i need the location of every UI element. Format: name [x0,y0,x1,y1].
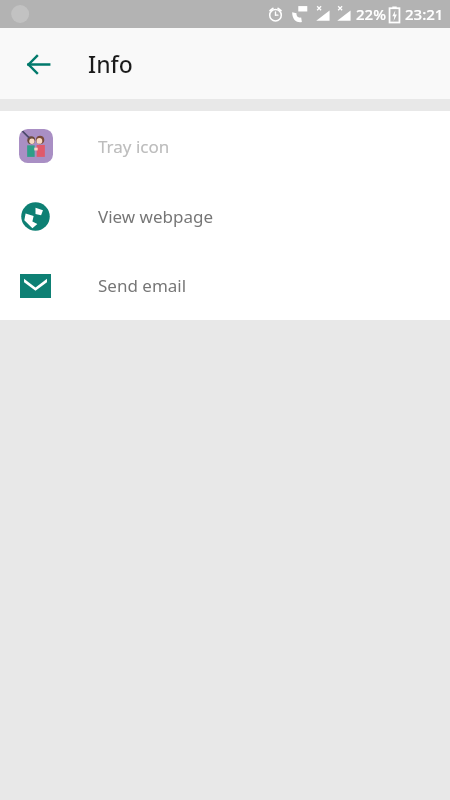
button[interactable]: View webpage [0,181,450,251]
button[interactable]: Send email [0,251,450,320]
staticText: Info [88,48,133,79]
staticText: View webpage [98,205,214,228]
button[interactable]: Back [14,40,62,88]
staticText: Send email [98,274,187,297]
staticText: 23:21 [405,4,444,24]
staticText: 22% [356,4,386,24]
button[interactable]: Tray icon [0,111,450,181]
staticText: Tray icon [98,135,170,158]
